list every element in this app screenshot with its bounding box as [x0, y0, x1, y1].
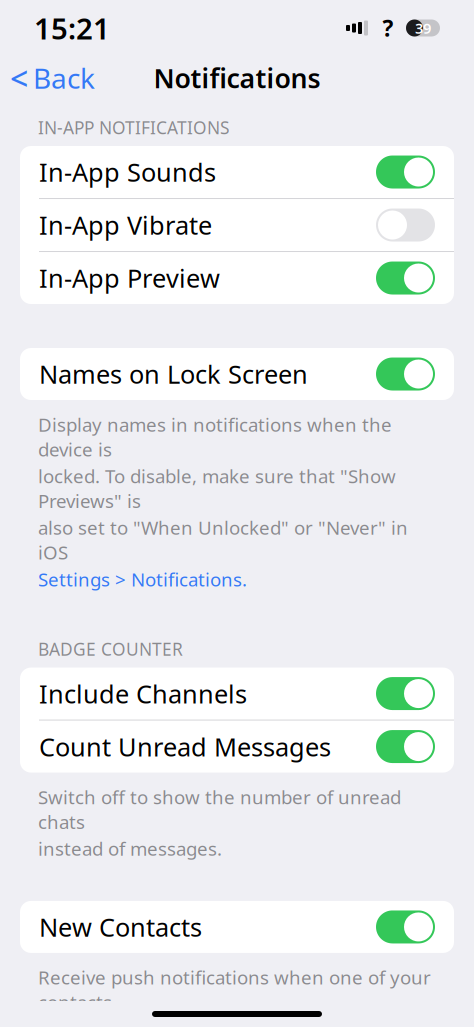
- button[interactable]: In-App Sounds: [20, 146, 454, 198]
- staticText: In-App Sounds: [39, 155, 216, 189]
- staticText: also set to "When Unlocked" or "Never" i…: [38, 515, 408, 565]
- staticText: In-App Preview: [39, 261, 220, 295]
- staticText: 15:21: [34, 8, 110, 47]
- staticText: <: [10, 57, 28, 99]
- staticText: ?: [382, 13, 393, 43]
- staticText: IN-APP NOTIFICATIONS: [38, 116, 230, 139]
- button[interactable]: In-App Vibrate: [20, 199, 454, 251]
- button[interactable]: <: [0, 51, 95, 105]
- staticText: becomes available on Telegram.: [38, 1016, 317, 1027]
- staticText: Display names in notifications when the …: [38, 412, 392, 462]
- staticText: 39: [415, 18, 431, 38]
- staticText: Switch off to show the number of unread …: [38, 785, 401, 834]
- staticText: BADGE COUNTER: [38, 637, 183, 660]
- staticText: Back: [33, 59, 95, 97]
- staticText: Settings > Notifications.: [38, 567, 247, 592]
- staticText: Include Channels: [39, 677, 247, 710]
- staticText: locked. To disable, make sure that "Show…: [38, 464, 396, 513]
- staticText: instead of messages.: [38, 836, 222, 861]
- button[interactable]: In-App Preview: [20, 252, 454, 304]
- staticText: Receive push notifications when one of y…: [38, 965, 431, 1014]
- button[interactable]: Include Channels: [20, 668, 454, 720]
- staticText: New Contacts: [39, 910, 202, 944]
- staticText: Count Unread Messages: [39, 730, 331, 763]
- staticText: In-App Vibrate: [39, 208, 212, 242]
- button[interactable]: Names on Lock Screen: [20, 348, 454, 400]
- button[interactable]: Count Unread Messages: [20, 721, 454, 773]
- staticText: Names on Lock Screen: [39, 357, 308, 391]
- staticText: Notifications: [153, 60, 320, 96]
- button[interactable]: New Contacts: [20, 901, 454, 953]
